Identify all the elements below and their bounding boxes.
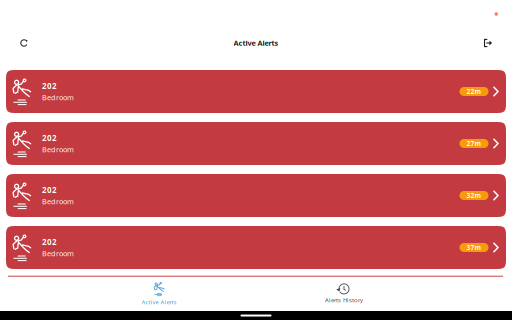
button[interactable]: 202 bbox=[6, 122, 506, 165]
button[interactable]: Alerts History bbox=[289, 280, 399, 308]
staticText: Alerts History bbox=[325, 296, 363, 304]
staticText: 202 bbox=[42, 185, 57, 195]
staticText: 202 bbox=[42, 133, 57, 143]
staticText: Active Alerts bbox=[141, 298, 176, 306]
staticText: 37m bbox=[466, 243, 481, 252]
staticText: 27m bbox=[466, 139, 481, 148]
staticText: Bedroom bbox=[42, 196, 74, 206]
button[interactable]: 202 bbox=[6, 226, 506, 269]
staticText: 22m bbox=[466, 87, 481, 96]
staticText: Bedroom bbox=[42, 92, 74, 102]
staticText: Active Alerts bbox=[233, 38, 278, 48]
staticText: 32m bbox=[466, 191, 481, 200]
staticText: Bedroom bbox=[42, 144, 74, 154]
staticText: 202 bbox=[42, 237, 57, 247]
staticText: Bedroom bbox=[42, 248, 74, 258]
button[interactable]: 202 bbox=[6, 174, 506, 217]
button[interactable]: Sign out bbox=[476, 31, 500, 55]
button[interactable]: Refresh bbox=[12, 31, 36, 55]
button[interactable]: 202 bbox=[6, 70, 506, 113]
staticText: 202 bbox=[42, 81, 57, 91]
button[interactable]: Active Alerts bbox=[104, 280, 214, 308]
